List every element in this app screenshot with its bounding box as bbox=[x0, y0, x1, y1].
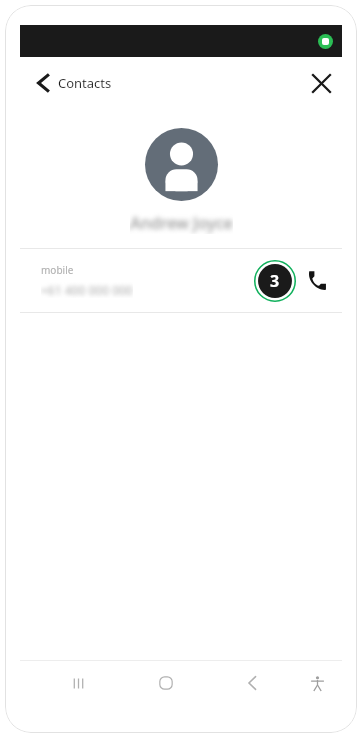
staticText: +61 400 000 000 bbox=[41, 282, 133, 298]
staticText: mobile bbox=[41, 263, 74, 277]
button[interactable]: 3 calls bbox=[253, 259, 297, 303]
staticText: Contacts bbox=[58, 74, 112, 92]
button[interactable]: Home bbox=[122, 661, 209, 705]
button[interactable]: Call bbox=[297, 258, 342, 303]
button[interactable]: Accessibility bbox=[296, 661, 338, 705]
button[interactable]: Close bbox=[301, 63, 342, 104]
button[interactable]: Back bbox=[209, 661, 296, 705]
button[interactable]: mobile bbox=[20, 249, 342, 312]
button[interactable]: Contacts bbox=[20, 65, 122, 101]
staticText: 3 bbox=[270, 270, 280, 292]
staticText: Andrew Joyce bbox=[130, 212, 233, 234]
button[interactable]: Recents bbox=[34, 661, 122, 705]
